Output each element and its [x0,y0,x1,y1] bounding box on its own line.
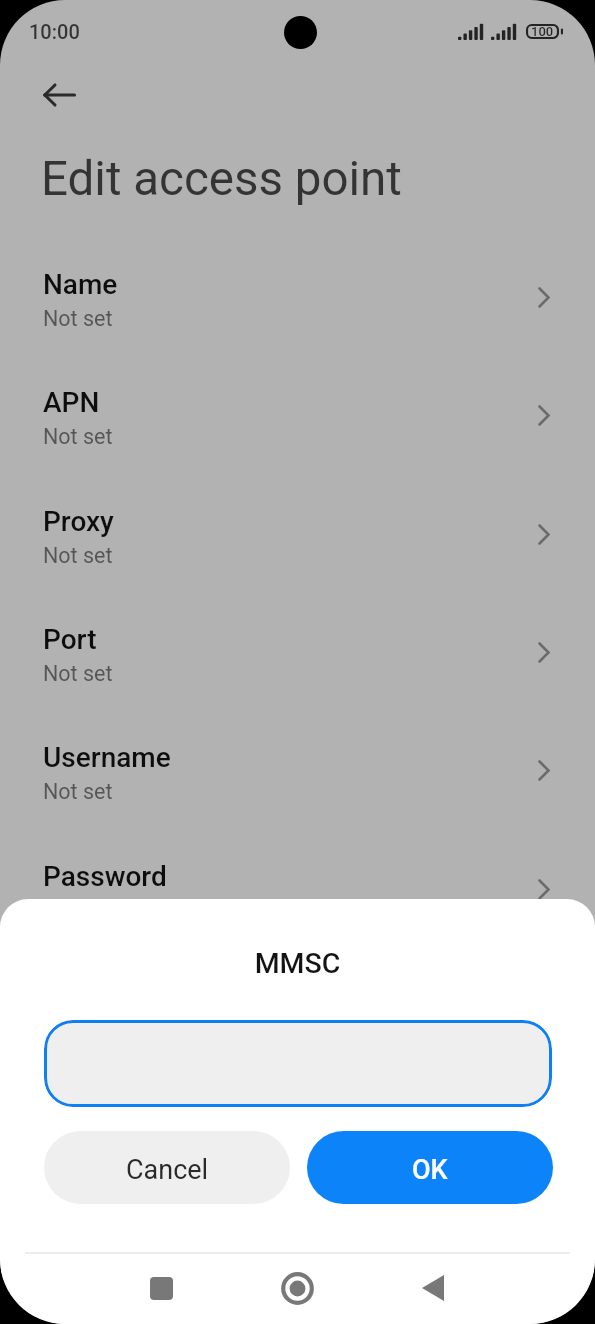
staticText: Not set [43,424,113,449]
staticText: 10:00 [29,20,80,43]
button[interactable]: Username [0,730,595,849]
button[interactable]: Name [0,257,595,376]
staticText: Username [43,741,171,774]
staticText: Not set [43,661,113,686]
staticText: Proxy [43,505,114,538]
button[interactable]: Back [405,1260,461,1316]
staticText: APN [43,386,100,419]
staticText: Not set [43,779,113,804]
button[interactable]: Recent apps [133,1260,189,1316]
staticText: Password [43,860,167,893]
button[interactable]: Port [0,612,595,731]
button[interactable]: Cancel [44,1131,290,1204]
staticText: OK [412,1154,448,1186]
button[interactable]: Password [0,849,595,968]
button[interactable]: OK [307,1131,553,1204]
staticText: Name [43,268,118,301]
staticText: 100 [531,24,554,39]
staticText: Port [43,623,97,656]
staticText: Not set [43,543,113,568]
staticText: Not set [43,898,113,923]
staticText: Cancel [126,1154,209,1186]
staticText: Edit access point [41,151,402,207]
button[interactable]: Back [28,64,90,126]
staticText: Not set [43,306,113,331]
button[interactable]: Proxy [0,494,595,613]
button[interactable]: Home [269,1260,325,1316]
staticText: MMSC [0,947,595,980]
button[interactable] [44,1020,552,1107]
button[interactable]: APN [0,375,595,494]
